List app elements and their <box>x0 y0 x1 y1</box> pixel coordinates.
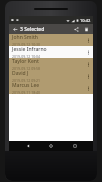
staticText: Taylor Kent <box>12 58 39 65</box>
button[interactable]: Recents <box>70 141 80 151</box>
button[interactable]: More options <box>84 36 92 44</box>
staticText: 10:42 <box>80 18 91 23</box>
button[interactable]: Share <box>72 25 81 34</box>
staticText: John Smith <box>12 34 38 41</box>
staticText: David J <box>12 70 29 77</box>
button[interactable]: John Smith <box>9 34 93 46</box>
staticText: 2019-09-12 10:04 <box>12 54 41 58</box>
button[interactable]: Back <box>23 141 33 151</box>
staticText: 2019-09-11 18:40 <box>12 90 41 94</box>
staticText: Marcus Lee <box>12 82 40 89</box>
button[interactable]: Home <box>46 141 56 151</box>
button[interactable]: Delete <box>82 25 91 34</box>
button[interactable]: More options <box>84 72 92 80</box>
staticText: 3 Selected <box>20 26 45 33</box>
staticText: 2019-09-12 09:58 <box>12 66 41 70</box>
button[interactable]: Taylor Kent <box>9 58 93 70</box>
button[interactable]: More options <box>84 84 92 92</box>
button[interactable]: David J <box>9 70 93 82</box>
button[interactable]: Jessie Infrarno <box>9 46 93 58</box>
button[interactable]: Back <box>11 25 19 33</box>
staticText: 2019-09-12 09:21 <box>12 78 41 82</box>
staticText: Jessie Infrarno <box>12 46 47 53</box>
button[interactable]: More options <box>84 48 92 56</box>
button[interactable]: Marcus Lee <box>9 82 93 94</box>
button[interactable]: More options <box>84 60 92 68</box>
staticText: 2019-09-12 10:30 <box>12 42 41 46</box>
